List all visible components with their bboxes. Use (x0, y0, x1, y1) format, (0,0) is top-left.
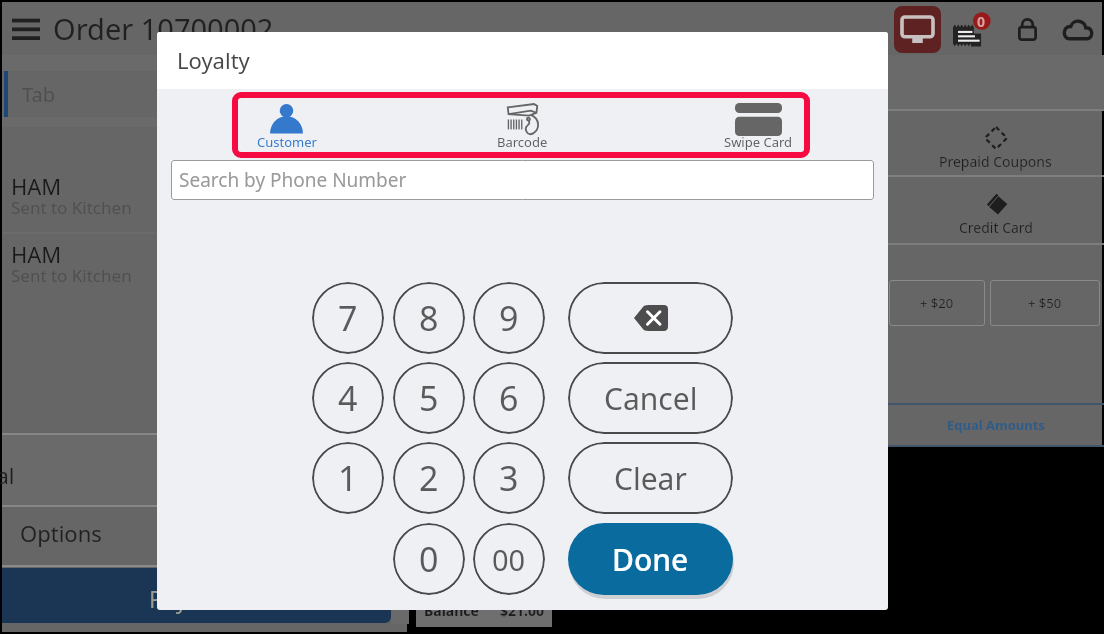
staticText: Cancel (604, 378, 698, 419)
staticText: 0 (977, 12, 986, 31)
button[interactable]: 9 (473, 282, 545, 354)
button[interactable]: Backspace (568, 282, 733, 354)
button[interactable]: 1 (312, 442, 384, 514)
button[interactable]: + $50 (990, 280, 1100, 326)
staticText: 00 (492, 540, 526, 579)
button[interactable]: Cloud (1058, 10, 1098, 48)
button[interactable]: 5 (393, 362, 465, 434)
button[interactable]: Done (568, 523, 733, 595)
button[interactable]: Customer (169, 90, 404, 160)
staticText: Done (612, 539, 689, 580)
button[interactable]: Menu (12, 18, 40, 40)
button[interactable]: Swipe Card (640, 90, 876, 160)
staticText: + $20 (920, 294, 954, 312)
staticText: 9 (499, 295, 519, 341)
staticText: Tab (22, 81, 56, 108)
staticText: Loyalty (177, 45, 250, 75)
button[interactable]: 7 (312, 282, 384, 354)
button[interactable]: + $20 (889, 280, 985, 326)
staticText: HAM (11, 239, 62, 269)
staticText: Prepaid Coupons (939, 152, 1052, 171)
staticText: 3 (499, 455, 519, 501)
button[interactable]: Tab (2, 71, 402, 117)
button[interactable]: 4 (312, 362, 384, 434)
button[interactable]: Clear (568, 442, 733, 514)
staticText: Order 10700002 (53, 9, 274, 48)
staticText: Customer (257, 133, 317, 151)
button[interactable]: Lock (1012, 10, 1042, 48)
staticText: 2 (419, 455, 439, 501)
button[interactable]: 00 (473, 523, 545, 595)
staticText: + $50 (1028, 294, 1062, 312)
staticText: $21.00 (500, 601, 544, 620)
button[interactable]: 3 (473, 442, 545, 514)
button[interactable]: Credit Card (887, 177, 1104, 241)
button[interactable]: Pay $21.00 (2, 568, 391, 623)
staticText: 7 (338, 295, 358, 341)
staticText: Subtotal (0, 460, 15, 490)
button[interactable]: HAM (2, 239, 402, 305)
staticText: Balance (424, 601, 479, 620)
staticText: 0 (419, 536, 439, 582)
button[interactable]: Receipts (953, 10, 989, 48)
button[interactable]: Options (2, 507, 402, 565)
staticText: HAM (11, 171, 62, 201)
staticText: Sent to Kitchen (11, 264, 132, 287)
button[interactable]: Display (894, 6, 941, 53)
staticText: Pay $21.00 (149, 583, 266, 614)
staticText: 8 (419, 295, 439, 341)
staticText: Barcode (497, 133, 548, 151)
staticText: 1 (338, 455, 358, 501)
button[interactable]: 0 (393, 523, 465, 595)
staticText: 4 (338, 375, 358, 421)
staticText: Equal Amounts (947, 416, 1045, 434)
button[interactable]: Barcode (404, 90, 640, 160)
staticText: Sent to Kitchen (11, 196, 132, 219)
button[interactable]: 2 (393, 442, 465, 514)
button[interactable]: 8 (393, 282, 465, 354)
button[interactable]: Search by Phone Number (171, 160, 874, 200)
button[interactable]: Cancel (568, 362, 733, 434)
staticText: Search by Phone Number (179, 167, 407, 193)
button[interactable]: HAM (2, 171, 402, 237)
staticText: Credit Card (959, 218, 1033, 237)
button[interactable]: 6 (473, 362, 545, 434)
staticText: Options (20, 518, 102, 548)
staticText: Swipe Card (724, 133, 793, 151)
staticText: 6 (499, 375, 519, 421)
staticText: 5 (419, 375, 439, 421)
staticText: Clear (614, 458, 687, 499)
button[interactable]: Equal Amounts (887, 405, 1104, 445)
button[interactable]: Prepaid Coupons (887, 111, 1104, 175)
